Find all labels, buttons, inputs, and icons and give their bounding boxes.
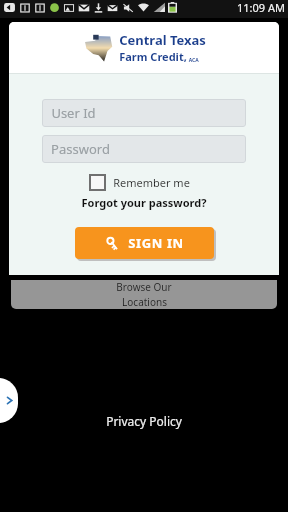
- button[interactable]: Open navigation drawer: [0, 378, 18, 423]
- staticText: Password: [51, 140, 110, 158]
- button[interactable]: Remember me: [89, 174, 190, 191]
- staticText: Remember me: [113, 175, 190, 190]
- staticText: Farm Credit,: [119, 49, 187, 64]
- staticText: Browse Our: [116, 280, 172, 294]
- staticText: 11:09 AM: [237, 0, 285, 15]
- staticText: Central Texas: [119, 31, 206, 49]
- button[interactable]: Forgot your password?: [79, 194, 209, 211]
- staticText: ACA: [187, 57, 199, 64]
- staticText: Forgot your password?: [81, 195, 207, 210]
- staticText: Privacy Policy: [106, 413, 182, 429]
- staticText: SIGN IN: [128, 234, 184, 252]
- button[interactable]: Password: [42, 135, 246, 163]
- button[interactable]: User Id: [42, 99, 246, 127]
- staticText: Locations: [122, 295, 167, 309]
- button[interactable]: SIGN IN: [75, 227, 214, 259]
- staticText: User Id: [51, 104, 96, 122]
- button[interactable]: Privacy Policy: [102, 409, 186, 433]
- button[interactable]: Browse Our: [11, 280, 277, 309]
